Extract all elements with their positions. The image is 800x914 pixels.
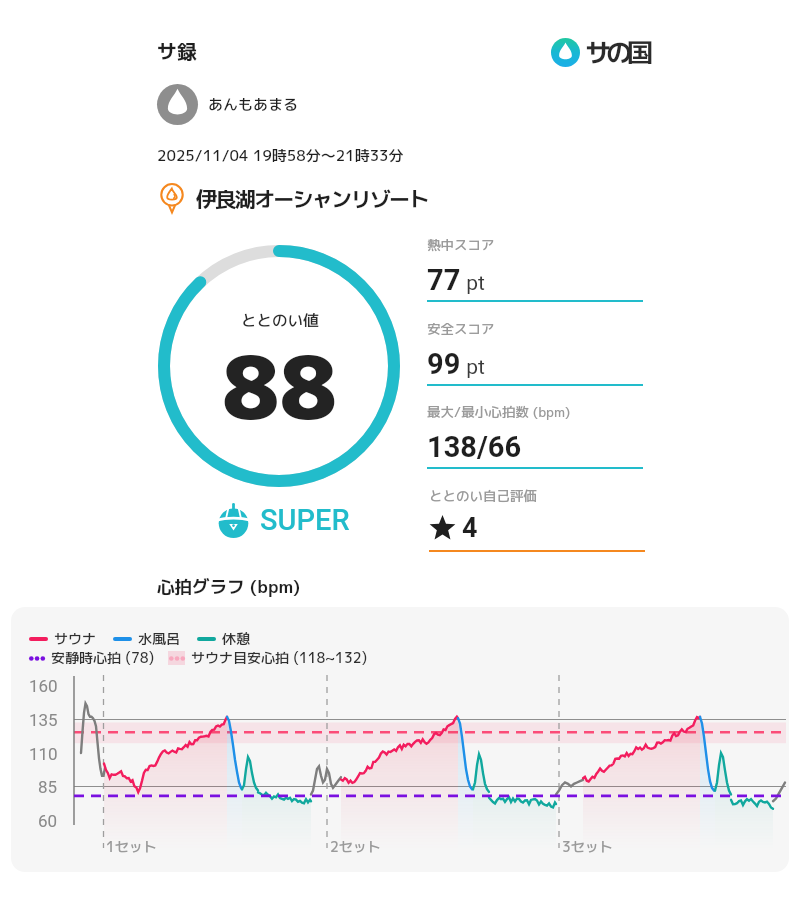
- staticText: 4: [462, 512, 478, 544]
- staticText: サウナ目安心拍 (118~132): [191, 648, 368, 668]
- staticText: 160: [29, 676, 58, 696]
- staticText: SUPER: [260, 503, 350, 537]
- staticText: 88: [222, 326, 337, 447]
- staticText: 心拍グラフ (bpm): [157, 574, 301, 598]
- staticText: 安全スコア: [427, 319, 495, 338]
- staticText: ととのい値: [241, 309, 319, 331]
- button[interactable]: あんもあまる: [157, 84, 299, 125]
- staticText: 休憩: [222, 629, 250, 649]
- staticText: あんもあまる: [208, 94, 299, 115]
- staticText: pt: [461, 271, 485, 296]
- staticText: 2セット: [330, 837, 381, 857]
- other: Sauna venue: [156, 182, 188, 214]
- staticText: 110: [29, 744, 58, 764]
- staticText: サの国: [585, 34, 649, 70]
- button[interactable]: 最大/最小心拍数 (bpm): [427, 402, 643, 469]
- staticText: 1セット: [106, 837, 157, 857]
- staticText: 99: [427, 347, 461, 381]
- staticText: pt: [461, 355, 485, 380]
- button[interactable]: 安全スコア: [427, 319, 643, 386]
- staticText: 135: [29, 710, 58, 730]
- staticText: 水風呂: [138, 629, 180, 649]
- staticText: ととのい自己評価: [429, 486, 537, 505]
- staticText: 85: [38, 777, 58, 797]
- staticText: 最大/最小心拍数 (bpm): [427, 402, 571, 421]
- staticText: 77: [427, 263, 461, 297]
- staticText: 2025/11/04 19時58分〜21時33分: [157, 145, 404, 166]
- staticText: 伊良湖オーシャンリゾート: [196, 184, 428, 213]
- button[interactable]: 熱中スコア: [427, 235, 643, 302]
- button[interactable]: ととのい自己評価: [429, 486, 645, 552]
- button[interactable]: サの国 logo: [551, 34, 649, 70]
- button[interactable]: SUPER: [215, 501, 350, 538]
- staticText: サウナ: [54, 629, 96, 649]
- staticText: 熱中スコア: [427, 235, 495, 254]
- staticText: 60: [38, 811, 58, 831]
- staticText: 138/66: [427, 430, 522, 464]
- staticText: 安静時心拍 (78): [51, 648, 155, 668]
- button[interactable]: サ録: [157, 37, 197, 65]
- other: サの国 logo: [551, 38, 580, 67]
- staticText: 3セット: [562, 837, 613, 857]
- staticText: サ録: [157, 37, 197, 65]
- button[interactable]: Sauna venue: [156, 182, 428, 214]
